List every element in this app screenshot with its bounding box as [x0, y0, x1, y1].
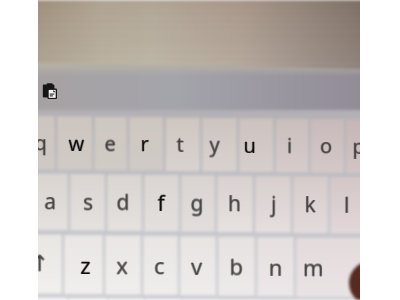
button[interactable]: Photo of a phone on-screen keyboard — [0, 0, 400, 300]
